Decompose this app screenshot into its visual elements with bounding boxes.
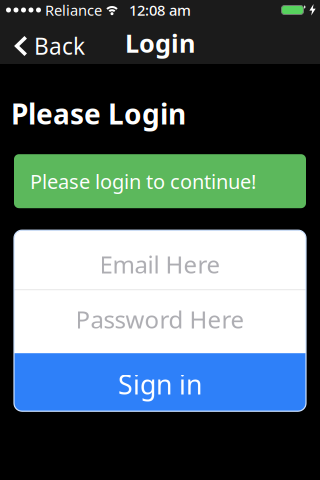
- staticText: Please login to continue!: [30, 168, 256, 194]
- button[interactable]: Email: [14, 230, 306, 289]
- button[interactable]: Password: [14, 290, 306, 353]
- staticText: Sign in: [118, 366, 202, 402]
- staticText: Login: [125, 26, 195, 60]
- staticText: Please Login: [11, 95, 186, 132]
- staticText: Email Here: [99, 248, 220, 280]
- staticText: Back: [34, 31, 85, 61]
- staticText: Password Here: [75, 303, 244, 335]
- staticText: Reliance: [45, 0, 102, 20]
- staticText: 12:08 am: [129, 0, 191, 20]
- button[interactable]: Back: [0, 23, 85, 69]
- button[interactable]: Sign in: [14, 353, 306, 411]
